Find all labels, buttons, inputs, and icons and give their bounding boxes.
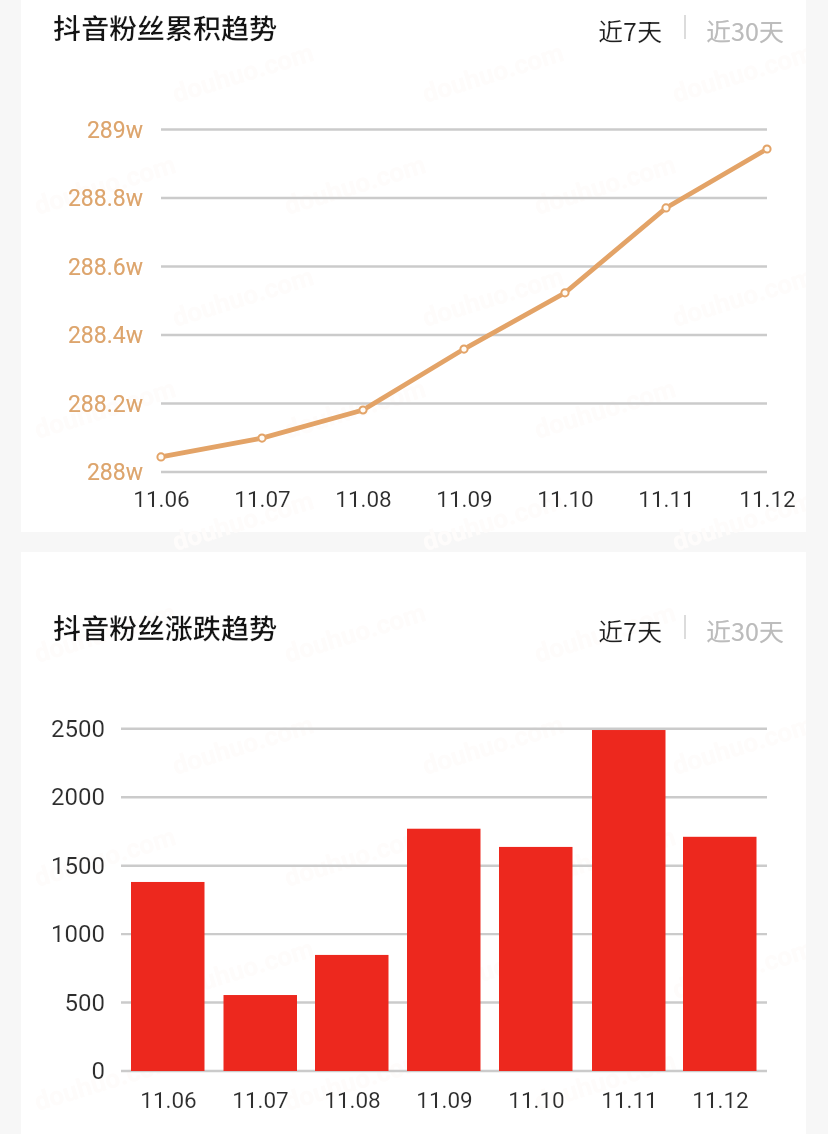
staticText: 11.10 [537, 486, 594, 512]
staticText: 288.4w [67, 322, 143, 349]
staticText: 288.2w [67, 391, 143, 418]
staticText: 11.12 [692, 1087, 749, 1113]
staticText: 11.09 [416, 1087, 473, 1113]
button[interactable]: 近30天 [694, 2, 796, 58]
staticText: 288.8w [67, 185, 143, 212]
button[interactable]: 抖音粉丝累积趋势 [43, 0, 288, 56]
staticText: 11.06 [140, 1087, 197, 1113]
button[interactable]: 近30天 [694, 602, 796, 658]
staticText: 近30天 [706, 12, 784, 48]
staticText: 11.07 [232, 1087, 289, 1113]
staticText: 11.08 [335, 486, 392, 512]
staticText: 近30天 [706, 612, 784, 648]
staticText: 11.11 [601, 1087, 658, 1113]
staticText: 11.10 [508, 1087, 565, 1113]
staticText: 289w [86, 117, 143, 144]
button[interactable]: 抖音粉丝涨跌趋势 [43, 599, 288, 656]
staticText: 288w [86, 459, 143, 486]
staticText: 近7天 [598, 612, 662, 648]
other: 抖音粉丝涨跌趋势柱状图 [0, 0, 828, 1134]
staticText: 500 [64, 989, 105, 1017]
button[interactable]: 近7天 [586, 2, 674, 58]
staticText: 1500 [51, 852, 105, 880]
staticText: 2000 [51, 783, 105, 811]
staticText: 11.09 [436, 486, 493, 512]
staticText: 抖音粉丝涨跌趋势 [53, 607, 278, 648]
staticText: 11.07 [234, 486, 291, 512]
staticText: 11.08 [324, 1087, 381, 1113]
staticText: 2500 [51, 715, 105, 743]
staticText: 近7天 [598, 12, 662, 48]
other: 抖音粉丝累积趋势折线图 [0, 0, 828, 1134]
staticText: 288.6w [67, 254, 143, 281]
button[interactable]: 近7天 [586, 602, 674, 658]
staticText: 1000 [51, 920, 105, 948]
staticText: 11.12 [739, 486, 796, 512]
staticText: 0 [91, 1057, 105, 1085]
staticText: 11.06 [133, 486, 190, 512]
staticText: 抖音粉丝累积趋势 [53, 7, 278, 48]
staticText: 11.11 [638, 486, 695, 512]
